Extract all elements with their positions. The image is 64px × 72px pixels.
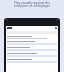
- staticText: Play casually against the: [0, 1, 64, 5]
- button[interactable]: [7, 53, 57, 57]
- staticText: computer or multiplayer: [0, 4, 64, 8]
- button[interactable]: [7, 41, 57, 45]
- button[interactable]: [7, 47, 57, 51]
- button[interactable]: [7, 59, 57, 63]
- button[interactable]: [7, 36, 57, 39]
